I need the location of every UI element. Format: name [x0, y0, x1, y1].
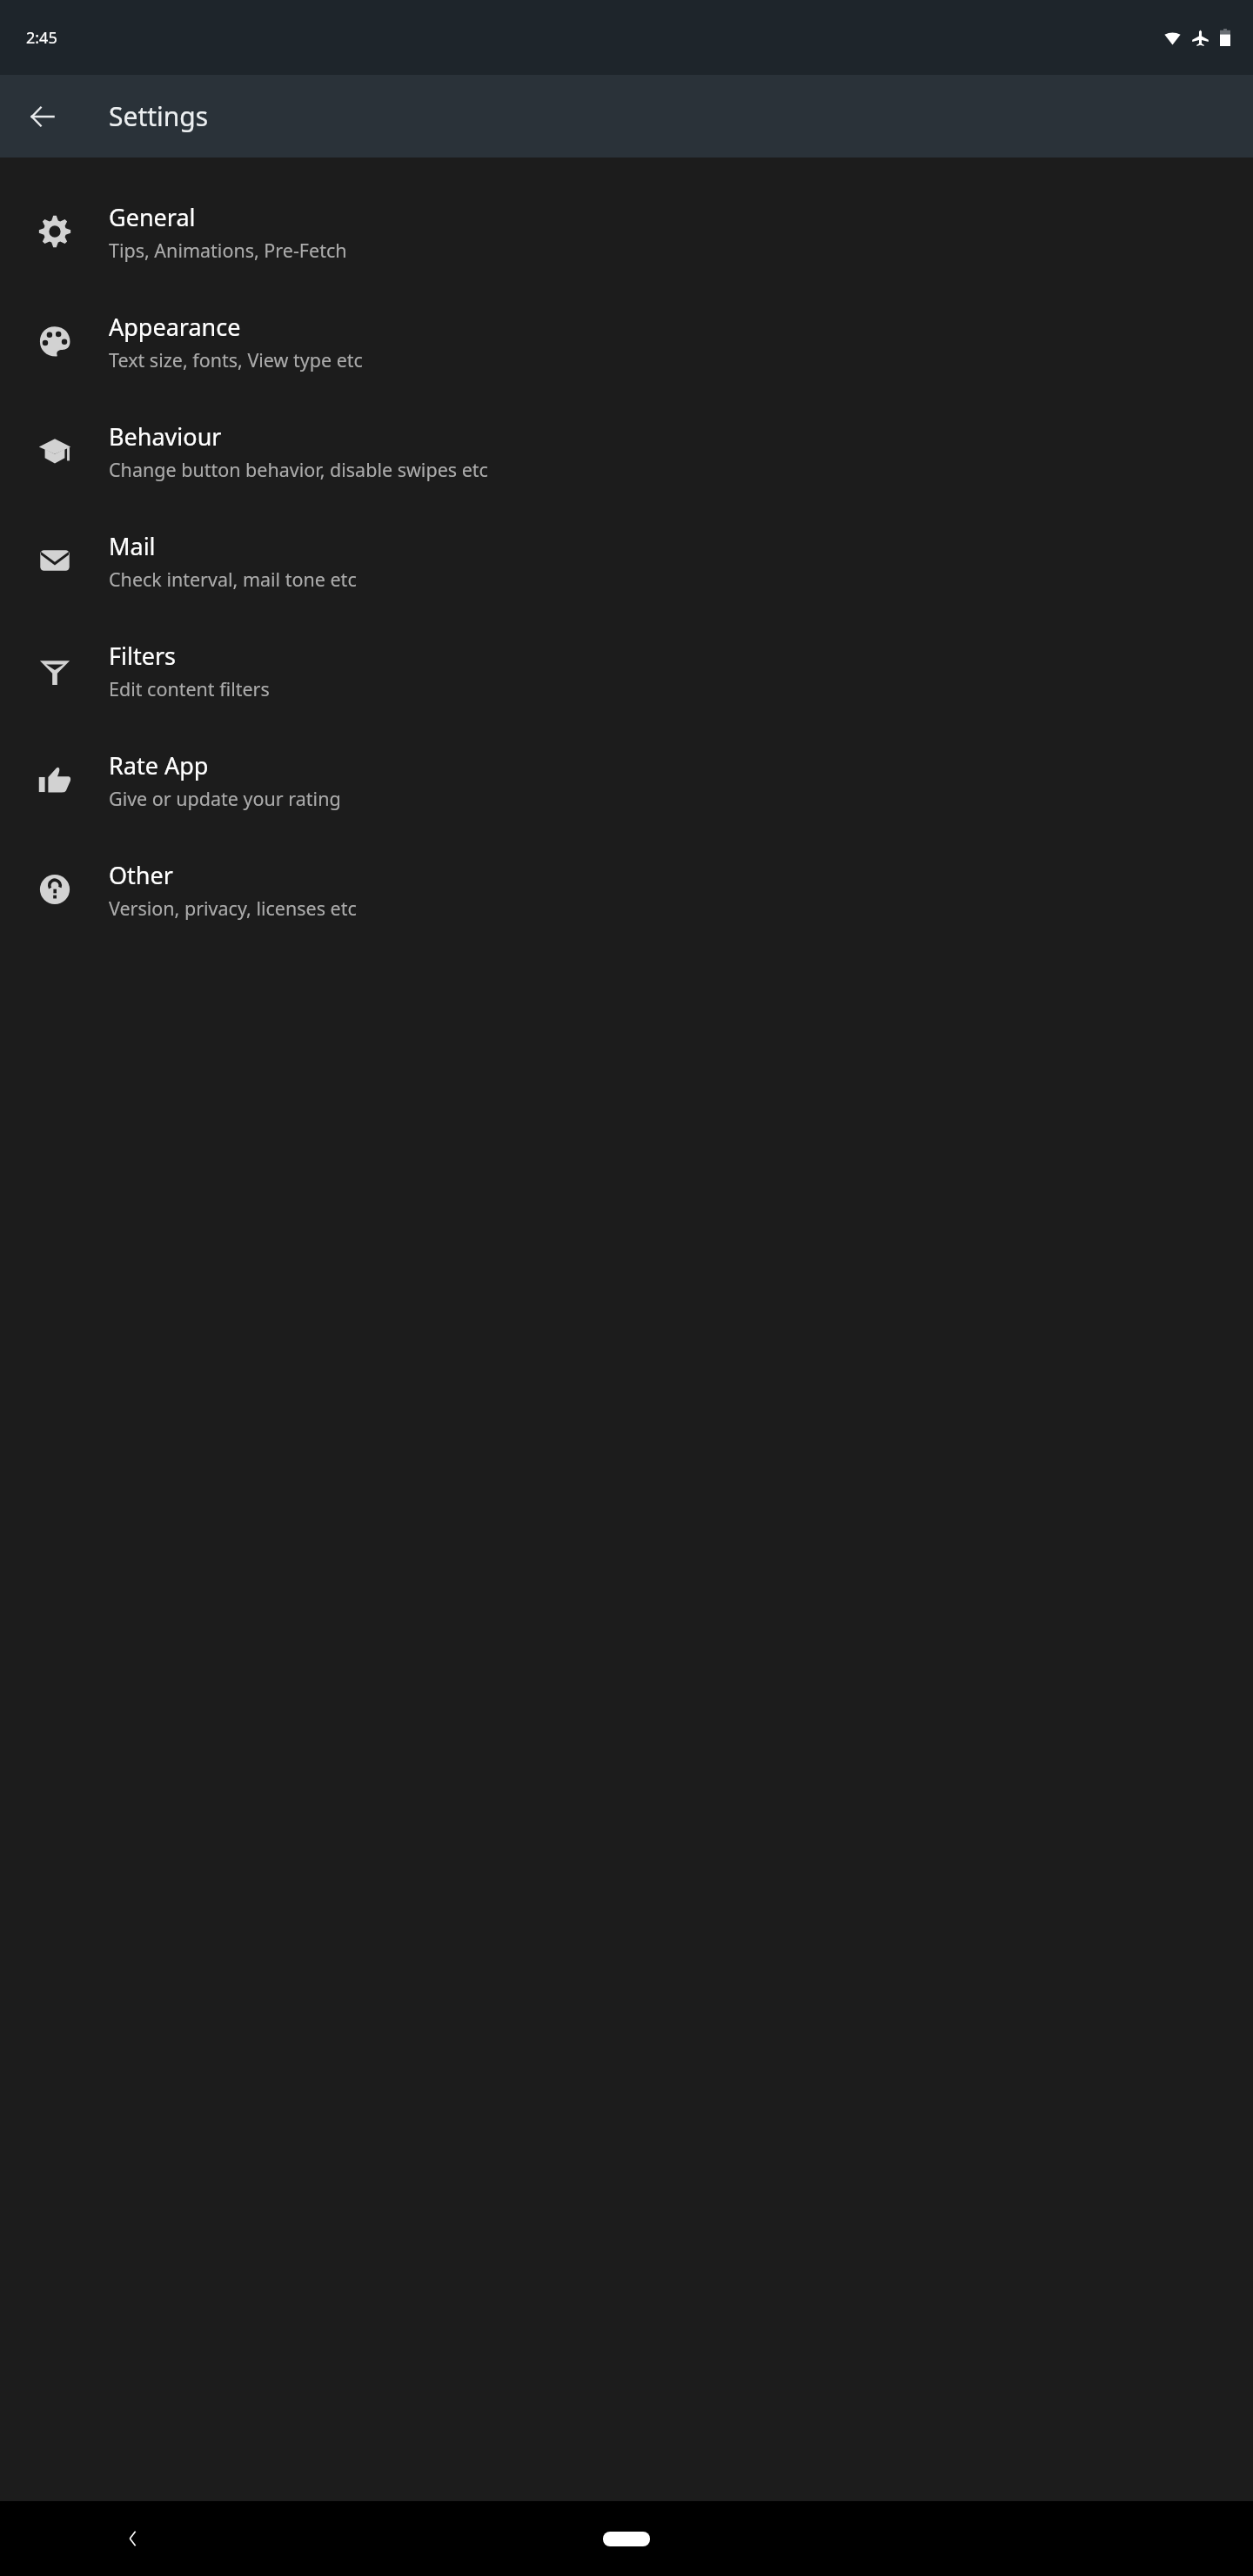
- staticText: Tips, Animations, Pre-Fetch: [109, 238, 347, 263]
- button[interactable]: Back: [109, 2514, 157, 2563]
- staticText: Filters: [109, 640, 177, 672]
- button[interactable]: Back: [17, 91, 69, 143]
- staticText: Change button behavior, disable swipes e…: [109, 457, 488, 482]
- button[interactable]: Mail: [0, 506, 1253, 615]
- staticText: Give or update your rating: [109, 786, 341, 811]
- staticText: General: [109, 201, 196, 233]
- staticText: Behaviour: [109, 420, 222, 453]
- button[interactable]: Filters: [0, 615, 1253, 725]
- staticText: Check interval, mail tone etc: [109, 567, 357, 592]
- staticText: Settings: [109, 98, 209, 134]
- staticText: Mail: [109, 530, 156, 562]
- staticText: Rate App: [109, 749, 209, 782]
- staticText: Version, privacy, licenses etc: [109, 896, 357, 921]
- staticText: Appearance: [109, 311, 241, 343]
- staticText: Edit content filters: [109, 676, 270, 701]
- staticText: Other: [109, 859, 173, 891]
- button[interactable]: Home: [603, 2532, 650, 2546]
- button[interactable]: Other: [0, 835, 1253, 944]
- button[interactable]: Appearance: [0, 286, 1253, 396]
- button[interactable]: Behaviour: [0, 396, 1253, 506]
- button[interactable]: General: [0, 177, 1253, 286]
- staticText: 2:45: [26, 27, 57, 49]
- button[interactable]: Rate App: [0, 725, 1253, 835]
- staticText: Text size, fonts, View type etc: [109, 347, 363, 372]
